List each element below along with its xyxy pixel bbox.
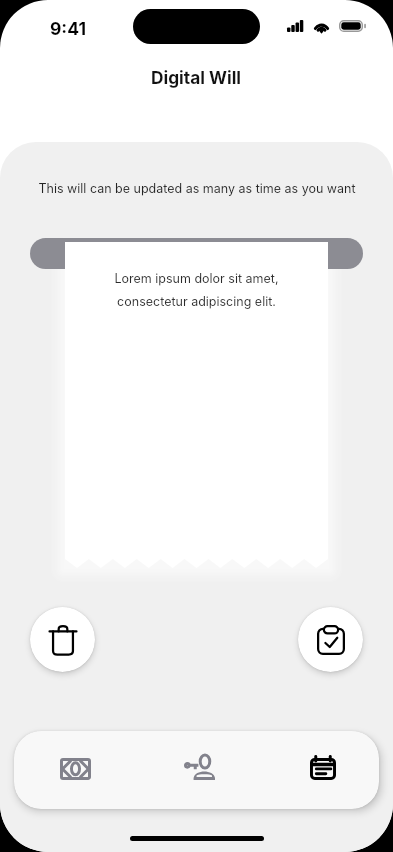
button[interactable]: Delete xyxy=(30,607,95,672)
button[interactable]: Money xyxy=(14,731,137,809)
button[interactable]: Beneficiaries xyxy=(138,731,261,809)
staticText: Digital Will xyxy=(151,67,242,88)
staticText: This will can be updated as many as time… xyxy=(38,181,356,196)
button[interactable]: Confirm xyxy=(298,607,363,672)
staticText: 9:41 xyxy=(50,18,86,39)
staticText: Lorem ipsum dolor sit amet, consectetur … xyxy=(114,271,279,309)
button[interactable]: Will xyxy=(261,731,379,809)
